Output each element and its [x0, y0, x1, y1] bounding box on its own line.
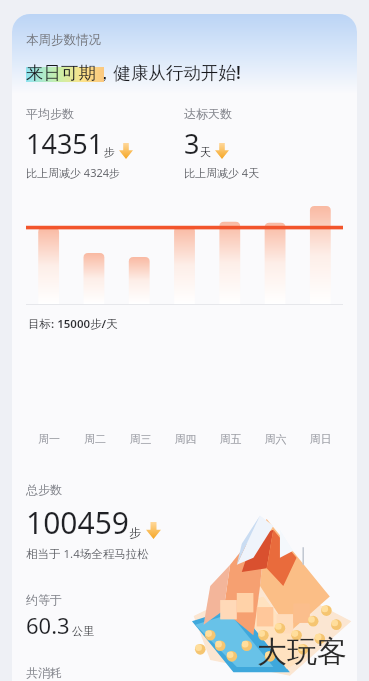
button[interactable]: 平均步数 [26, 106, 184, 180]
staticText: 14351 [26, 125, 104, 162]
staticText: 周日 [298, 432, 343, 446]
staticText: 步 [104, 145, 115, 159]
staticText: 达标天数 [184, 106, 232, 121]
other: Decrease [119, 143, 133, 159]
staticText: 3 [184, 125, 200, 162]
staticText: 周二 [72, 432, 118, 446]
staticText: 公里 [72, 624, 94, 638]
staticText: 步 [129, 525, 141, 540]
staticText: 大玩客 [257, 633, 347, 671]
staticText: 总步数 [26, 482, 62, 497]
staticText: 来日可期，健康从行动开始! [26, 60, 241, 84]
staticText: 周三 [118, 432, 163, 446]
staticText: 平均步数 [26, 106, 74, 121]
staticText: 目标: 15000步/天 [28, 316, 118, 332]
staticText: 本周步数情况 [26, 32, 101, 48]
staticText: 约等于 [26, 592, 62, 607]
staticText: 周四 [163, 432, 208, 446]
staticText: 比上周减少 4天 [184, 165, 260, 180]
button[interactable]: 共消耗 [26, 665, 101, 681]
button[interactable]: 约等于 [26, 592, 94, 640]
staticText: 60.3 [26, 610, 70, 640]
other: Decrease [215, 143, 229, 159]
staticText: 周一 [26, 432, 72, 446]
staticText: 周五 [208, 432, 253, 446]
staticText: 周六 [253, 432, 298, 446]
staticText: 天 [200, 145, 211, 159]
staticText: 100459 [26, 502, 129, 543]
staticText: 共消耗 [26, 665, 62, 680]
staticText: 比上周减少 4324步 [26, 165, 121, 180]
other: Decrease [146, 522, 161, 539]
button[interactable]: 达标天数 [184, 106, 343, 180]
staticText: 相当于 1.4场全程马拉松 [26, 546, 149, 562]
